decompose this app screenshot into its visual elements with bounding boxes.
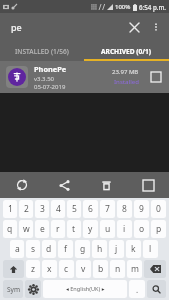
button[interactable]: Share — [43, 172, 85, 198]
staticText: Installed — [114, 78, 139, 86]
button[interactable]: n — [110, 260, 125, 278]
button[interactable]: g — [75, 240, 90, 258]
button[interactable]: Symbols — [3, 280, 23, 298]
staticText: 0 — [156, 203, 161, 215]
staticText: 4 — [56, 203, 61, 215]
button[interactable]: j — [109, 240, 124, 258]
staticText: z — [31, 263, 35, 275]
button[interactable]: Space — [43, 280, 127, 298]
staticText: 100% — [115, 3, 131, 11]
staticText: . — [136, 284, 139, 295]
button[interactable]: z — [26, 260, 40, 278]
staticText: ARCHIVED (0/1) — [101, 47, 152, 56]
button[interactable]: 5 — [67, 200, 81, 218]
staticText: b — [98, 263, 104, 275]
staticText: 6 — [88, 203, 93, 215]
button[interactable]: Shift — [3, 260, 24, 278]
staticText: l — [149, 243, 152, 255]
button[interactable]: d — [42, 240, 56, 258]
staticText: s — [31, 243, 36, 255]
staticText: i — [123, 223, 126, 235]
staticText: y — [88, 223, 93, 235]
button[interactable]: Refresh — [0, 172, 43, 198]
staticText: Sym — [7, 285, 20, 294]
staticText: u — [105, 223, 111, 235]
button[interactable]: q — [3, 220, 17, 238]
staticText: pe — [11, 21, 22, 33]
staticText: 7 — [105, 203, 110, 215]
staticText: v3.3.50 — [34, 75, 54, 83]
button[interactable]: o — [134, 220, 149, 238]
staticText: r — [56, 223, 60, 235]
button[interactable]: Clear search — [122, 15, 146, 39]
button[interactable]: s — [26, 240, 40, 258]
staticText: t — [72, 223, 76, 235]
button[interactable]: f — [58, 240, 73, 258]
staticText: j — [115, 243, 118, 255]
button[interactable]: a — [10, 240, 24, 258]
button[interactable]: 1 — [3, 200, 17, 218]
staticText: v — [81, 263, 86, 275]
button[interactable]: y — [83, 220, 98, 238]
staticText: 6:54 p.m. — [139, 3, 166, 11]
button[interactable]: p — [151, 220, 166, 238]
button[interactable]: Delete — [85, 172, 127, 198]
button[interactable]: l — [143, 240, 158, 258]
button[interactable]: INSTALLED (1/56) — [0, 41, 84, 61]
button[interactable]: . — [129, 280, 145, 298]
button[interactable]: t — [67, 220, 81, 238]
staticText: 5 — [72, 203, 77, 215]
button[interactable]: Backspace — [144, 260, 166, 278]
button[interactable]: PhonePe — [0, 61, 169, 93]
button[interactable]: e — [35, 220, 49, 238]
button[interactable]: u — [100, 220, 115, 238]
staticText: w — [23, 223, 30, 235]
staticText: n — [115, 263, 121, 275]
button[interactable]: 4 — [51, 200, 65, 218]
staticText: 9 — [139, 203, 144, 215]
button[interactable]: k — [126, 240, 141, 258]
button[interactable]: h — [92, 240, 107, 258]
staticText: 8 — [122, 203, 127, 215]
staticText: p — [156, 223, 162, 235]
staticText: o — [139, 223, 145, 235]
staticText: 2 — [24, 203, 29, 215]
staticText: 23.97 MB — [112, 68, 139, 76]
staticText: INSTALLED (1/56) — [15, 47, 69, 56]
staticText: PhonePe — [34, 64, 67, 74]
staticText: e — [40, 223, 45, 235]
button[interactable]: 7 — [100, 200, 115, 218]
staticText: k — [131, 243, 136, 255]
staticText: x — [47, 263, 52, 275]
button[interactable]: Select PhonePe — [146, 67, 166, 87]
button[interactable]: Select all — [127, 172, 169, 198]
button[interactable]: 9 — [134, 200, 149, 218]
button[interactable]: w — [19, 220, 33, 238]
button[interactable]: c — [59, 260, 74, 278]
staticText: g — [80, 243, 86, 255]
button[interactable]: Settings — [25, 280, 41, 298]
button[interactable]: Search — [147, 280, 166, 298]
button[interactable]: v — [76, 260, 91, 278]
staticText: 3 — [40, 203, 45, 215]
staticText: c — [64, 263, 69, 275]
button[interactable]: 2 — [19, 200, 33, 218]
staticText: 1 — [8, 203, 13, 215]
button[interactable]: ARCHIVED (0/1) — [84, 41, 169, 61]
button[interactable]: x — [42, 260, 57, 278]
button[interactable]: 3 — [35, 200, 49, 218]
staticText: h — [97, 243, 103, 255]
staticText: d — [46, 243, 52, 255]
button[interactable]: i — [117, 220, 132, 238]
staticText: ◂ English(UK) ▸ — [66, 285, 105, 293]
staticText: 05-07-2019 — [34, 83, 66, 91]
button[interactable]: m — [127, 260, 142, 278]
button[interactable]: b — [93, 260, 108, 278]
button[interactable]: r — [51, 220, 65, 238]
button[interactable]: More options — [146, 17, 166, 37]
staticText: m — [131, 263, 139, 275]
button[interactable]: 6 — [83, 200, 98, 218]
button[interactable]: 0 — [151, 200, 166, 218]
staticText: q — [7, 223, 13, 235]
button[interactable]: 8 — [117, 200, 132, 218]
